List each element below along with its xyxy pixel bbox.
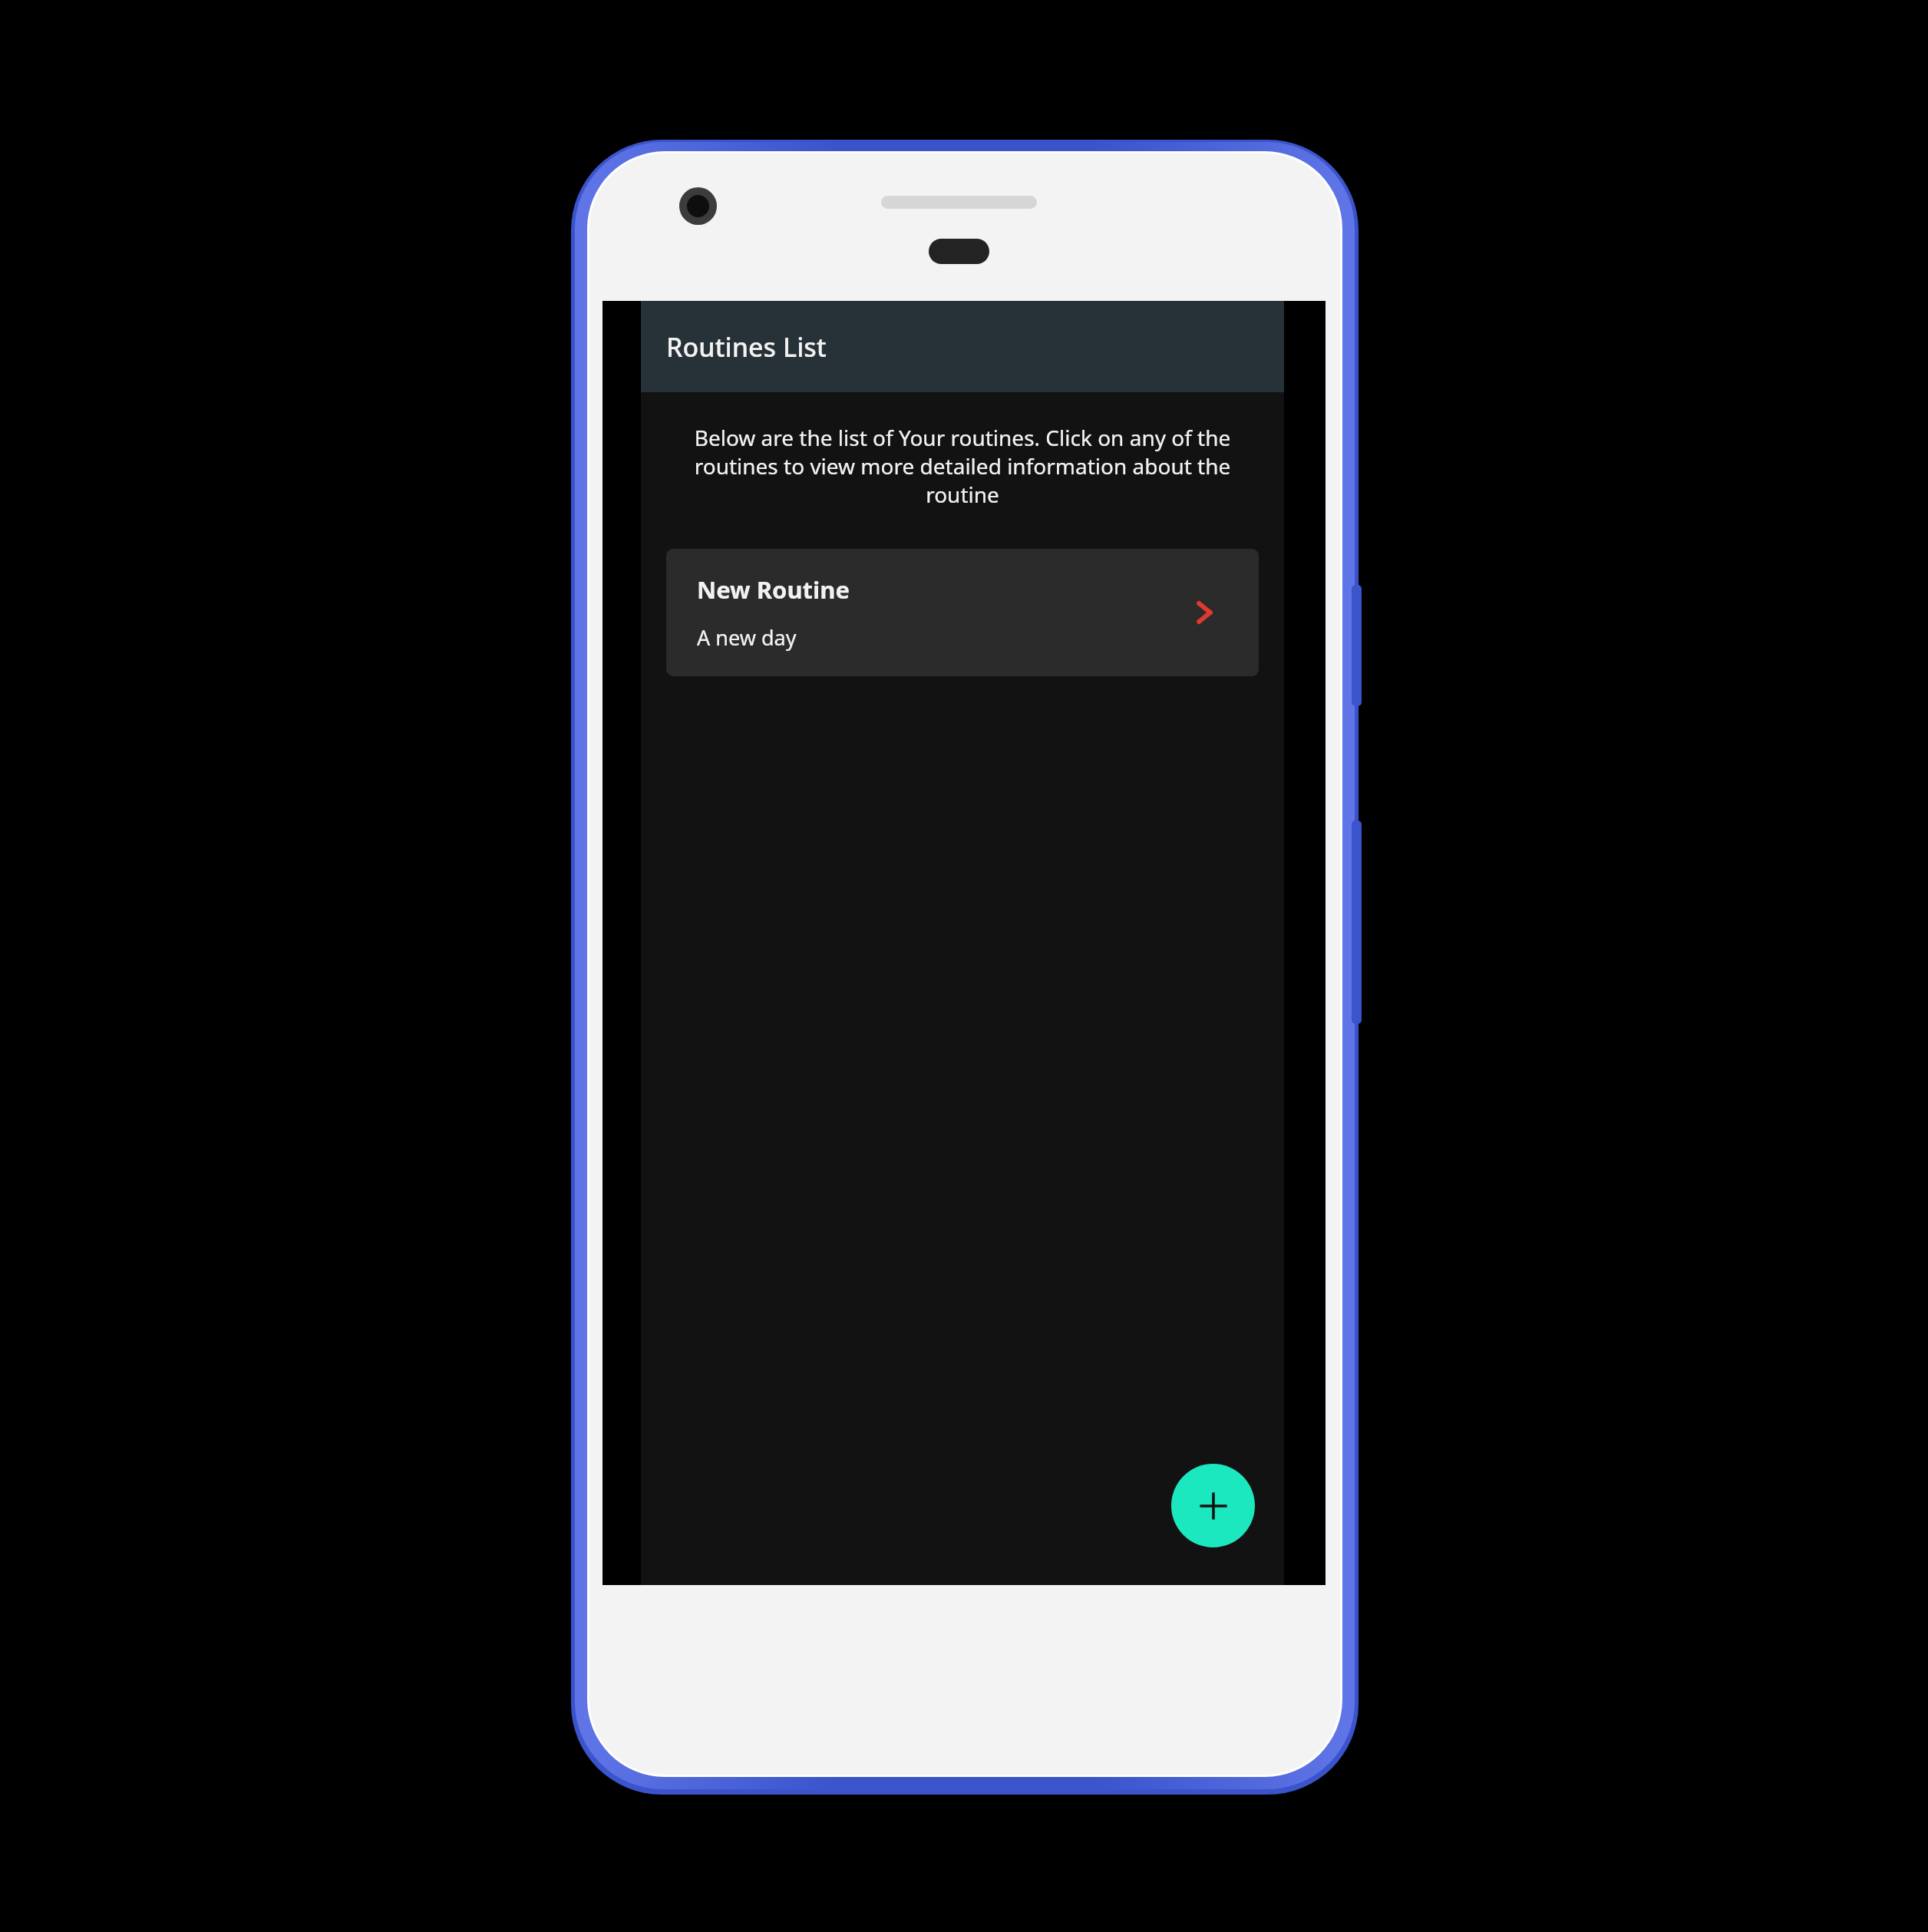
- button[interactable]: Add routine: [1171, 1464, 1255, 1547]
- button[interactable]: New Routine: [666, 549, 1259, 676]
- staticText: Below are the list of Your routines. Cli…: [664, 423, 1261, 509]
- staticText: New Routine: [697, 573, 850, 606]
- staticText: A new day: [697, 623, 797, 652]
- button[interactable]: Routines List: [641, 301, 1284, 392]
- staticText: Routines List: [666, 329, 827, 365]
